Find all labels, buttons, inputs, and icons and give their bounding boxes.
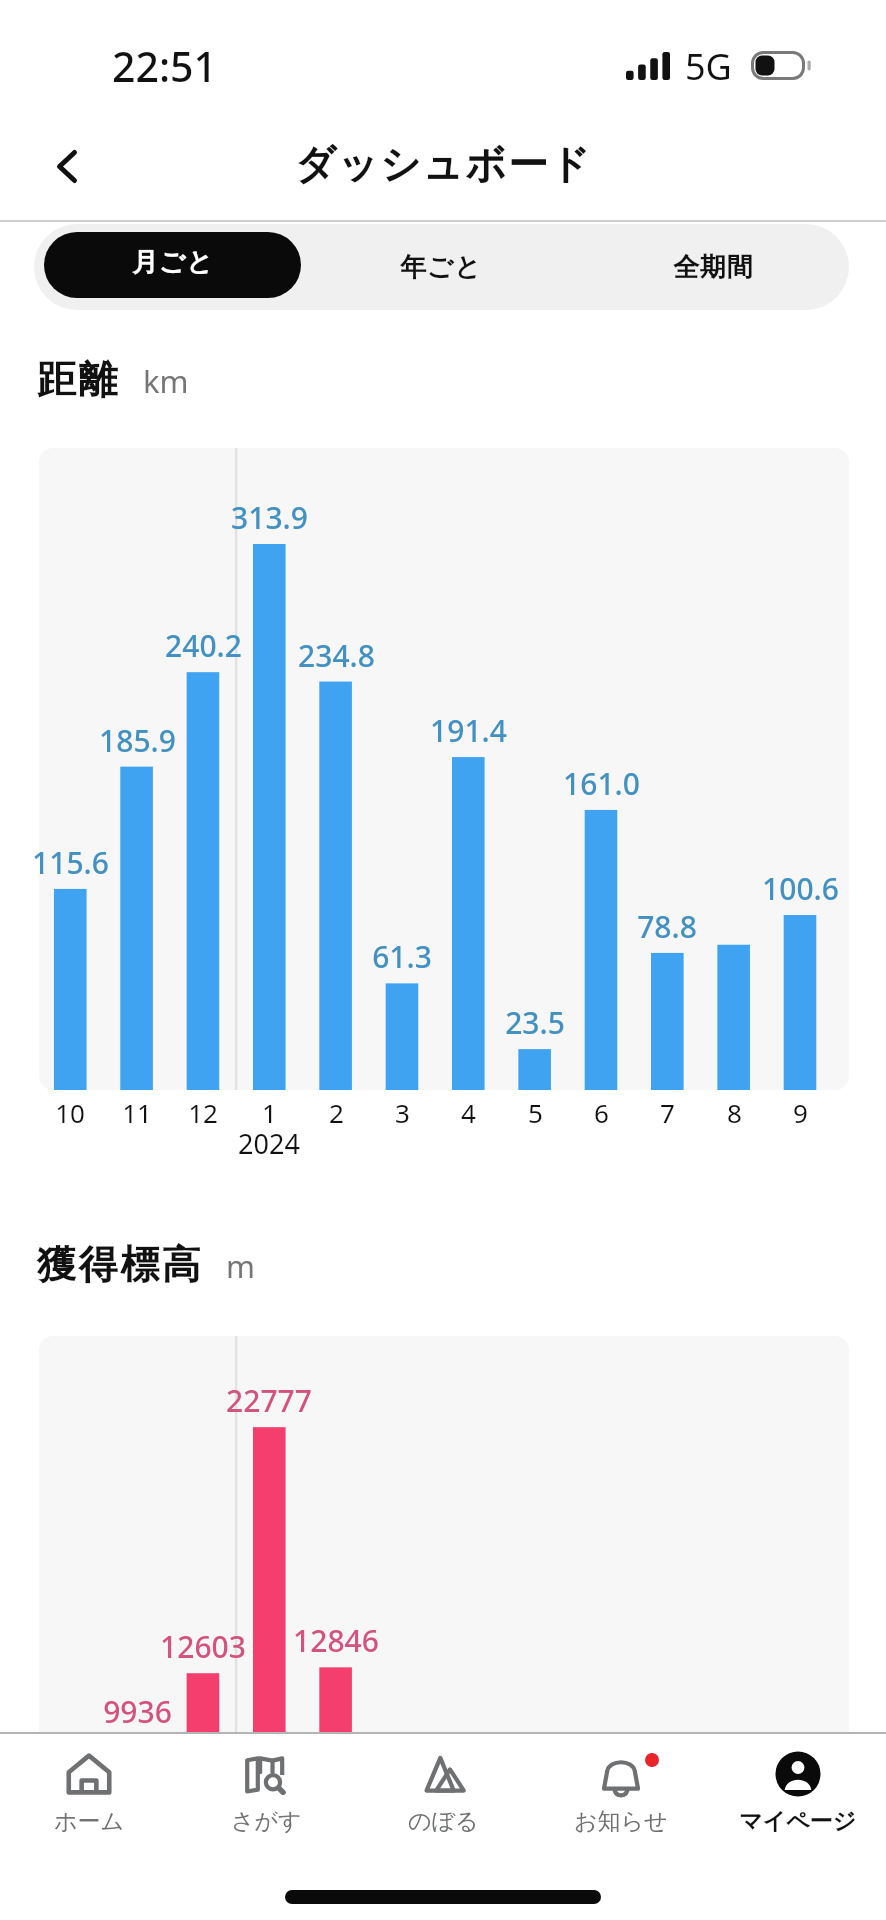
- staticText: 年ごと: [400, 251, 482, 284]
- staticText: 8: [727, 1095, 742, 1130]
- staticText: 78.8: [637, 906, 697, 947]
- staticText: 月ごと: [132, 246, 214, 279]
- staticText: 161.0: [563, 763, 640, 804]
- staticText: ダッシュボード: [295, 139, 592, 189]
- staticText: さがす: [231, 1807, 302, 1836]
- staticText: m: [226, 1245, 255, 1287]
- button[interactable]: 全期間: [577, 224, 849, 310]
- staticText: ホーム: [54, 1807, 125, 1836]
- button[interactable]: のぼる: [355, 1755, 532, 1840]
- staticText: 22:51: [112, 38, 217, 94]
- staticText: 12: [188, 1095, 218, 1130]
- staticText: 6: [594, 1095, 609, 1130]
- staticText: 12603: [160, 1626, 246, 1667]
- staticText: 獲得標高: [37, 1240, 204, 1289]
- button[interactable]: 月ごと: [44, 232, 301, 298]
- staticText: 240.2: [165, 625, 242, 666]
- button[interactable]: マイページ: [709, 1755, 886, 1840]
- staticText: 5: [528, 1095, 543, 1130]
- button[interactable]: ホーム: [0, 1755, 178, 1840]
- staticText: 313.9: [231, 497, 308, 538]
- staticText: 9: [793, 1095, 808, 1130]
- staticText: 22777: [226, 1380, 312, 1421]
- staticText: 4: [461, 1095, 476, 1130]
- staticText: 3: [395, 1095, 410, 1130]
- staticText: 191.4: [430, 710, 507, 751]
- staticText: 11: [122, 1095, 152, 1130]
- button[interactable]: さがす: [178, 1755, 355, 1840]
- staticText: お知らせ: [574, 1807, 668, 1836]
- staticText: 7: [660, 1095, 675, 1130]
- staticText: 全期間: [673, 251, 754, 284]
- staticText: 100.6: [762, 868, 839, 909]
- staticText: のぼる: [408, 1807, 479, 1836]
- staticText: 115.6: [32, 842, 109, 883]
- staticText: 2: [329, 1095, 344, 1130]
- staticText: 12846: [293, 1620, 379, 1661]
- button[interactable]: Back: [22, 121, 112, 211]
- staticText: 234.8: [298, 635, 375, 676]
- staticText: マイページ: [739, 1807, 857, 1836]
- staticText: km: [143, 360, 189, 402]
- staticText: 1: [262, 1095, 277, 1130]
- staticText: 61.3: [372, 936, 432, 977]
- staticText: 9936: [103, 1691, 172, 1732]
- button[interactable]: お知らせ: [532, 1755, 709, 1840]
- staticText: 距離: [37, 355, 121, 404]
- staticText: 185.9: [99, 720, 176, 761]
- staticText: 10: [55, 1095, 85, 1130]
- staticText: 2024: [238, 1125, 300, 1162]
- staticText: 23.5: [505, 1002, 565, 1043]
- button[interactable]: 年ごと: [305, 224, 577, 310]
- staticText: 5G: [685, 42, 732, 91]
